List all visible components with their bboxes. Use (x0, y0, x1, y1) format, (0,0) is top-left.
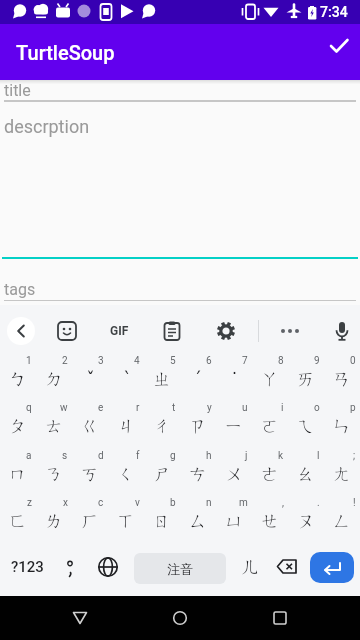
button[interactable]: e (72, 398, 108, 445)
staticText: ㄐ (117, 415, 136, 438)
staticText: ㄥ (333, 510, 352, 533)
button[interactable] (0, 102, 360, 259)
staticText: h (206, 450, 212, 462)
staticText: n (206, 497, 212, 509)
button[interactable]: ; (324, 446, 360, 493)
button[interactable]: 9 (288, 351, 324, 398)
button[interactable] (271, 544, 303, 590)
staticText: r (136, 402, 140, 414)
button[interactable]: u (216, 398, 252, 445)
button[interactable]: 注音 (134, 553, 226, 584)
button[interactable]: q (0, 398, 36, 445)
button[interactable]: k (252, 446, 288, 493)
button[interactable]: y (180, 398, 216, 445)
staticText: p (350, 402, 356, 414)
button[interactable]: m (216, 493, 252, 540)
button[interactable]: b (144, 493, 180, 540)
button[interactable] (312, 28, 360, 76)
button[interactable]: n (180, 493, 216, 540)
staticText: 0 (350, 355, 356, 367)
button[interactable] (52, 544, 88, 590)
button[interactable]: x (36, 493, 72, 540)
staticText: 7:34 (320, 4, 348, 20)
staticText: ?123 (11, 558, 44, 576)
button[interactable] (0, 259, 360, 302)
button[interactable] (156, 596, 204, 640)
button[interactable]: o (288, 398, 324, 445)
button[interactable]: f (108, 446, 144, 493)
button[interactable] (0, 80, 360, 102)
button[interactable]: ?123 (4, 545, 50, 589)
button[interactable]: . (288, 493, 324, 540)
button[interactable]: j (216, 446, 252, 493)
button[interactable]: t (144, 398, 180, 445)
staticText: y (207, 402, 212, 414)
button[interactable]: p (324, 398, 360, 445)
button[interactable]: a (0, 446, 36, 493)
staticText: i (281, 402, 284, 414)
staticText: ㄊ (45, 415, 64, 438)
button[interactable]: w (36, 398, 72, 445)
button[interactable]: r (108, 398, 144, 445)
button[interactable] (7, 317, 35, 345)
button[interactable]: , (252, 493, 288, 540)
button[interactable]: ! (324, 493, 360, 540)
button[interactable]: i (252, 398, 288, 445)
button[interactable]: d (72, 446, 108, 493)
staticText: k (278, 450, 284, 462)
button[interactable]: z (0, 493, 36, 540)
staticText: j (245, 450, 248, 462)
staticText: g (170, 450, 176, 462)
staticText: ㄗ (189, 415, 208, 438)
staticText: 5 (170, 355, 176, 367)
button[interactable] (256, 596, 304, 640)
button[interactable] (270, 311, 310, 351)
button[interactable]: GIF (99, 311, 139, 351)
staticText: GIF (110, 324, 129, 338)
button[interactable] (90, 544, 126, 590)
button[interactable] (310, 552, 354, 583)
staticText: ˊ (196, 368, 201, 391)
staticText: ㄍ (81, 415, 100, 438)
staticText: z (27, 497, 32, 509)
staticText: ㄋ (45, 463, 64, 486)
button[interactable]: g (144, 446, 180, 493)
button[interactable]: 6 (180, 351, 216, 398)
button[interactable]: 1 (0, 351, 36, 398)
button[interactable]: c (72, 493, 108, 540)
button[interactable]: h (180, 446, 216, 493)
button[interactable]: s (36, 446, 72, 493)
button[interactable]: 4 (108, 351, 144, 398)
button[interactable] (206, 311, 246, 351)
button[interactable]: 7 (216, 351, 252, 398)
staticText: d (98, 450, 104, 462)
button[interactable] (56, 596, 104, 640)
staticText: ㄢ (333, 368, 352, 391)
staticText: ㄈ (9, 510, 28, 533)
button[interactable]: l (288, 446, 324, 493)
staticText: 6 (206, 355, 212, 367)
staticText: 3 (98, 355, 104, 367)
button[interactable]: v (108, 493, 144, 540)
button[interactable] (152, 311, 192, 351)
staticText: b (170, 497, 176, 509)
staticText: w (60, 402, 68, 414)
button[interactable] (322, 311, 360, 351)
staticText: 1 (26, 355, 32, 367)
button[interactable]: 2 (36, 351, 72, 398)
staticText: 9 (314, 355, 320, 367)
button[interactable]: 0 (324, 351, 360, 398)
staticText: ㄞ (297, 368, 316, 391)
button[interactable]: 8 (252, 351, 288, 398)
button[interactable]: 3 (72, 351, 108, 398)
button[interactable]: ㄦ (233, 544, 269, 590)
button[interactable] (47, 311, 87, 351)
staticText: 7 (242, 355, 248, 367)
staticText: s (62, 450, 68, 462)
staticText: TurtleSoup (16, 41, 115, 64)
staticText: ㄤ (333, 463, 352, 486)
staticText: ㄆ (9, 415, 28, 438)
staticText: f (136, 450, 140, 462)
staticText: l (317, 450, 320, 462)
button[interactable]: 5 (144, 351, 180, 398)
